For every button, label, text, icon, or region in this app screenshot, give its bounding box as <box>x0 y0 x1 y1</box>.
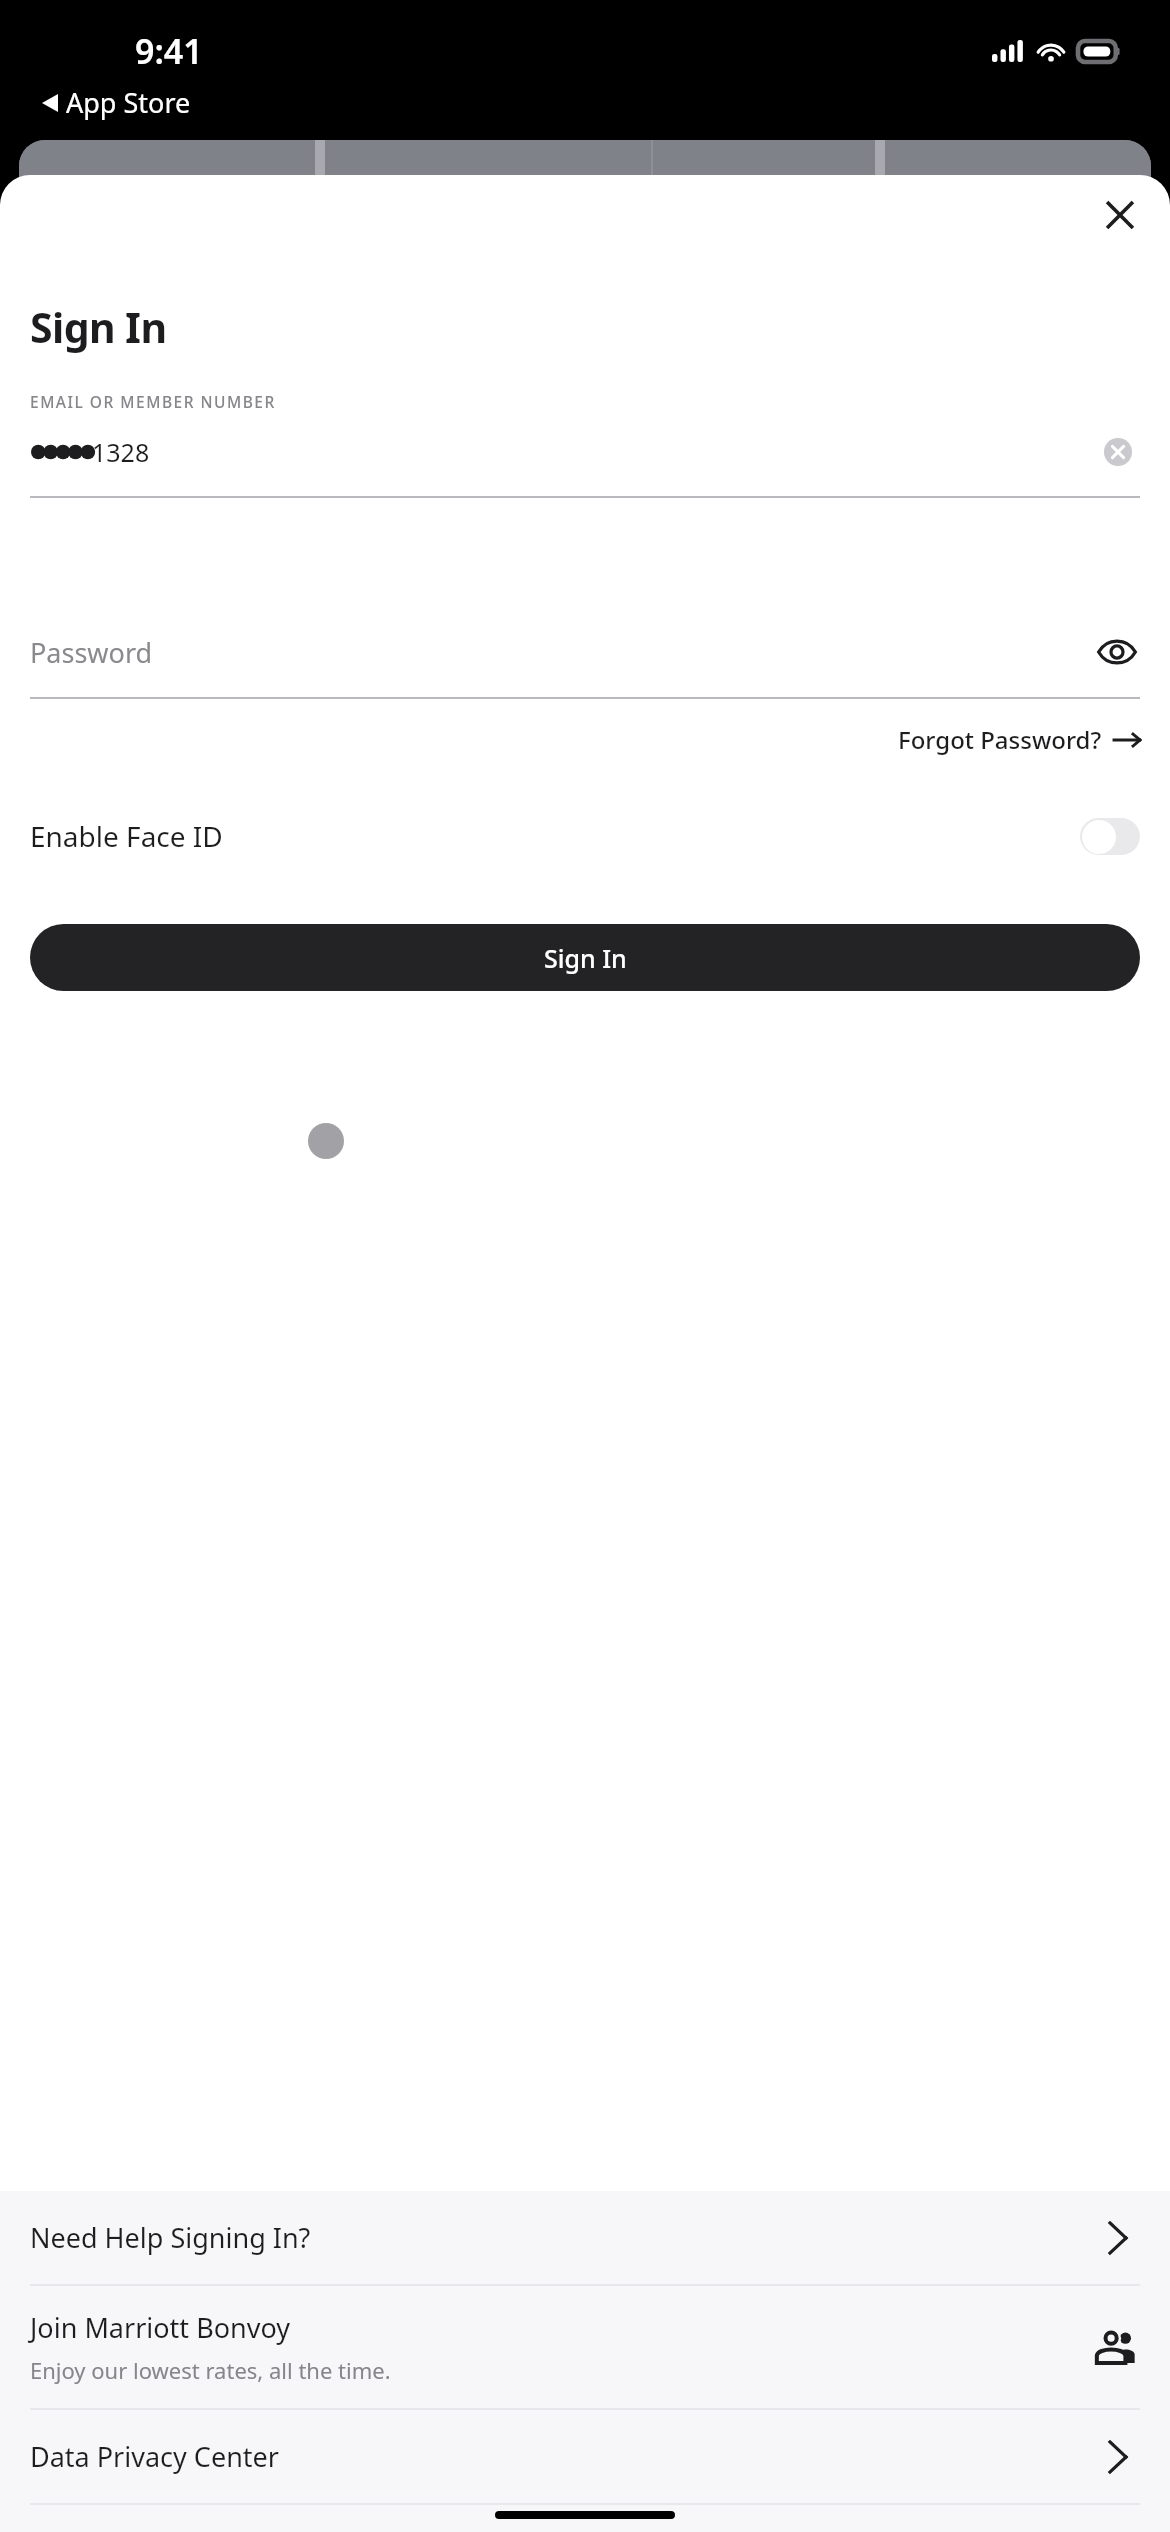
staticText: Password <box>30 634 1094 671</box>
staticText: App Store <box>66 84 191 121</box>
button[interactable]: Join Marriott Bonvoy <box>30 2286 1140 2408</box>
staticText: Sign In <box>544 941 627 975</box>
staticText: Join Marriott Bonvoy <box>30 2309 290 2346</box>
button[interactable]: Data Privacy Center <box>30 2410 1140 2503</box>
button[interactable]: Enable Face ID <box>30 806 1140 866</box>
staticText: Enjoy our lowest rates, all the time. <box>30 2355 391 2385</box>
button[interactable]: Password <box>30 629 1140 675</box>
button[interactable]: Show password <box>1094 629 1140 675</box>
button[interactable]: Close <box>1094 189 1146 241</box>
staticText: 9:41 <box>135 28 203 74</box>
staticText: 1328 <box>92 435 150 469</box>
staticText: Data Privacy Center <box>30 2438 1096 2475</box>
other: Open <box>1096 2216 1140 2260</box>
staticText: EMAIL OR MEMBER NUMBER <box>30 391 276 412</box>
button[interactable]: Forgot Password? <box>898 715 1140 764</box>
button[interactable]: Sign In <box>30 924 1140 991</box>
button[interactable]: Clear text <box>1096 430 1140 474</box>
button[interactable]: App Store <box>42 84 191 121</box>
staticText: Need Help Signing In? <box>30 2219 1096 2256</box>
staticText: Sign In <box>30 299 167 355</box>
other: Open <box>1096 2435 1140 2479</box>
button[interactable]: Enable Face ID toggle <box>1080 818 1140 855</box>
staticText: Forgot Password? <box>898 723 1102 756</box>
button[interactable]: Need Help Signing In? <box>30 2191 1140 2284</box>
staticText: Enable Face ID <box>30 817 1080 855</box>
